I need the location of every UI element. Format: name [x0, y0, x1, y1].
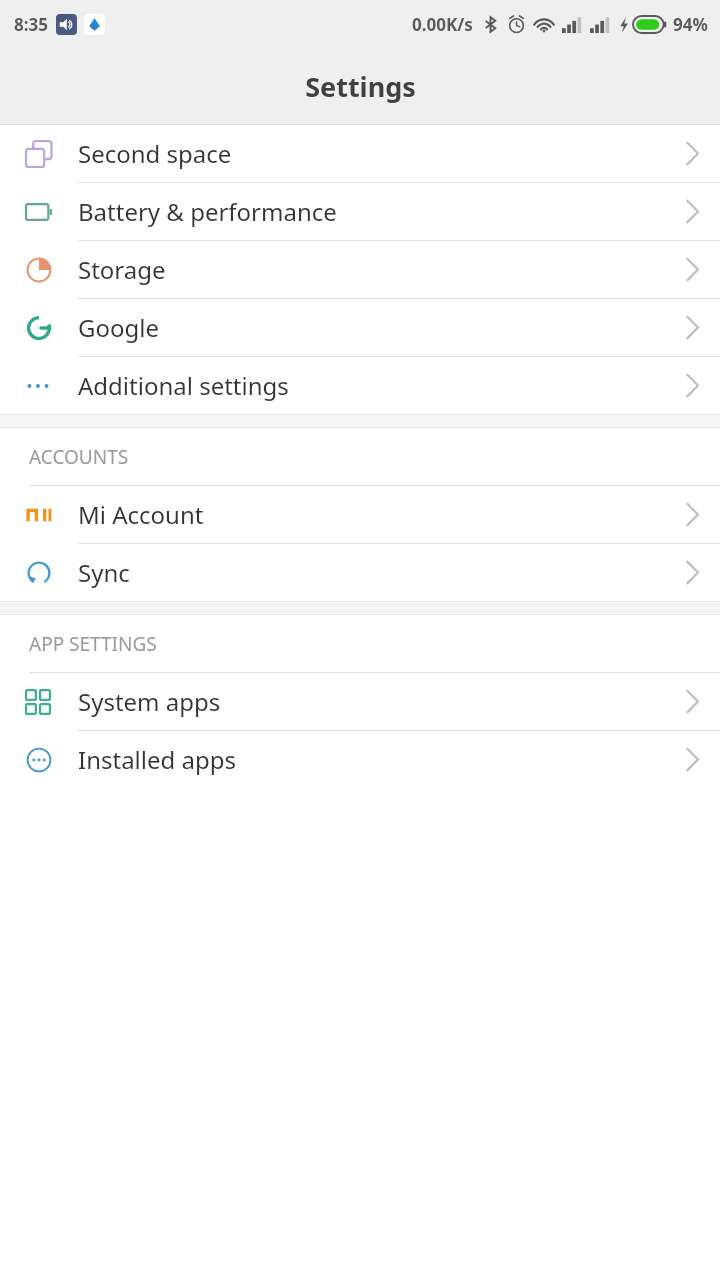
staticText: Storage — [78, 253, 665, 286]
staticText: Battery & performance — [78, 195, 665, 228]
staticText: Installed apps — [78, 743, 665, 776]
staticText: Google — [78, 311, 665, 344]
button[interactable]: System apps — [0, 673, 720, 731]
staticText: ACCOUNTS — [29, 444, 129, 470]
button[interactable]: Additional settings — [0, 357, 720, 414]
staticText: 0.00K/s — [412, 13, 473, 36]
button[interactable]: Storage — [0, 241, 720, 299]
button[interactable]: Installed apps — [0, 731, 720, 788]
staticText: System apps — [78, 685, 665, 718]
button[interactable]: Google — [0, 299, 720, 357]
staticText: Sync — [78, 556, 665, 589]
staticText: 8:35 — [14, 13, 48, 36]
staticText: Additional settings — [78, 369, 665, 402]
staticText: Settings — [305, 68, 416, 105]
button[interactable]: Battery & performance — [0, 183, 720, 241]
button[interactable]: Second space — [0, 125, 720, 183]
staticText: Second space — [78, 137, 665, 170]
staticText: 94% — [673, 13, 708, 36]
staticText: Mi Account — [78, 498, 665, 531]
button[interactable]: Sync — [0, 544, 720, 601]
button[interactable]: Mi Account — [0, 486, 720, 544]
staticText: APP SETTINGS — [29, 631, 157, 657]
